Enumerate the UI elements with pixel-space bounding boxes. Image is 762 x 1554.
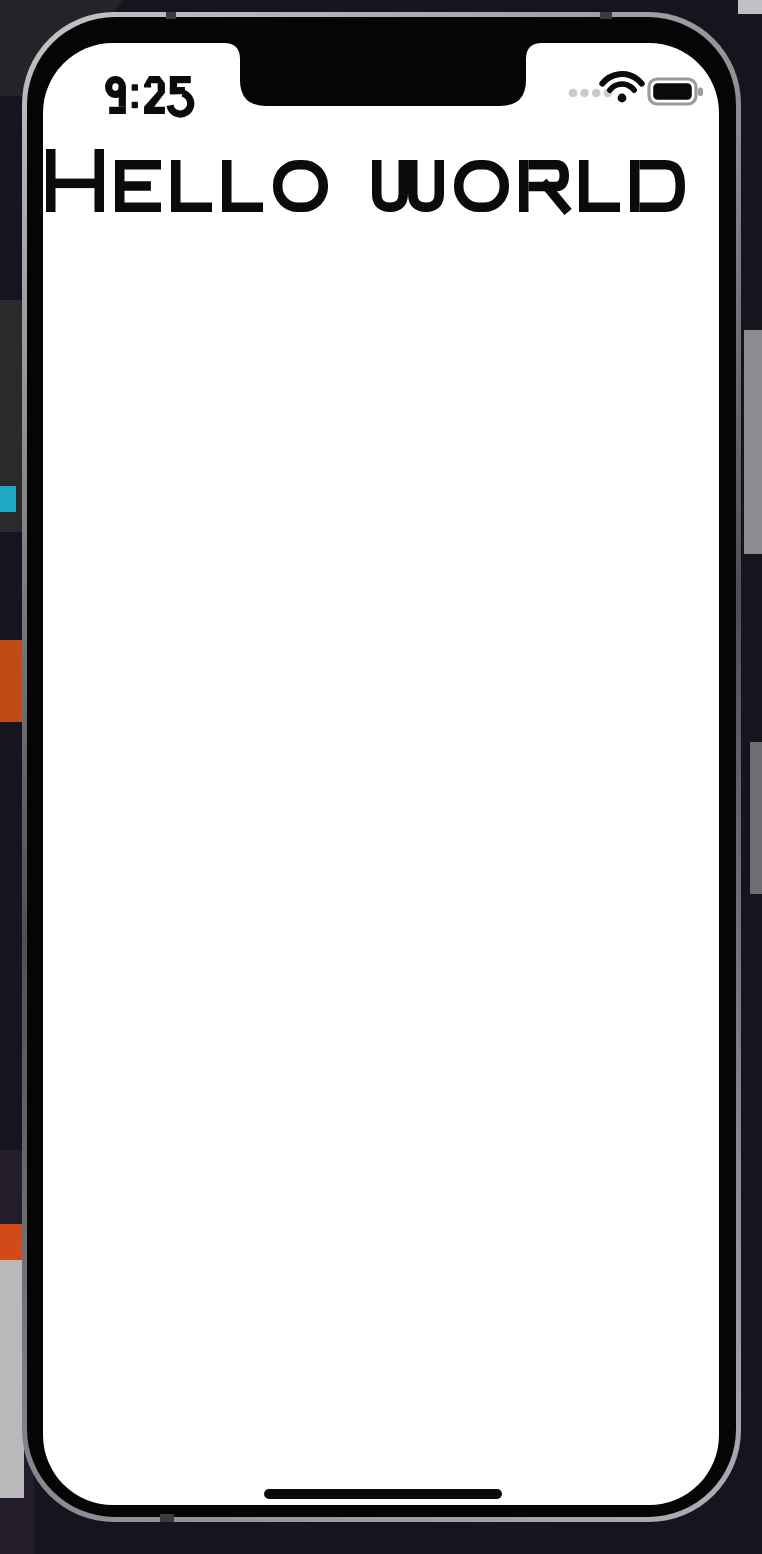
button[interactable]: Status bar <box>43 43 719 108</box>
button[interactable]: Wi-Fi <box>600 70 646 114</box>
button[interactable]: Battery <box>646 74 704 110</box>
button[interactable]: Hello world <box>43 140 719 222</box>
button[interactable]: Cellular signal <box>560 72 600 112</box>
button[interactable]: Home indicator <box>250 1478 512 1506</box>
